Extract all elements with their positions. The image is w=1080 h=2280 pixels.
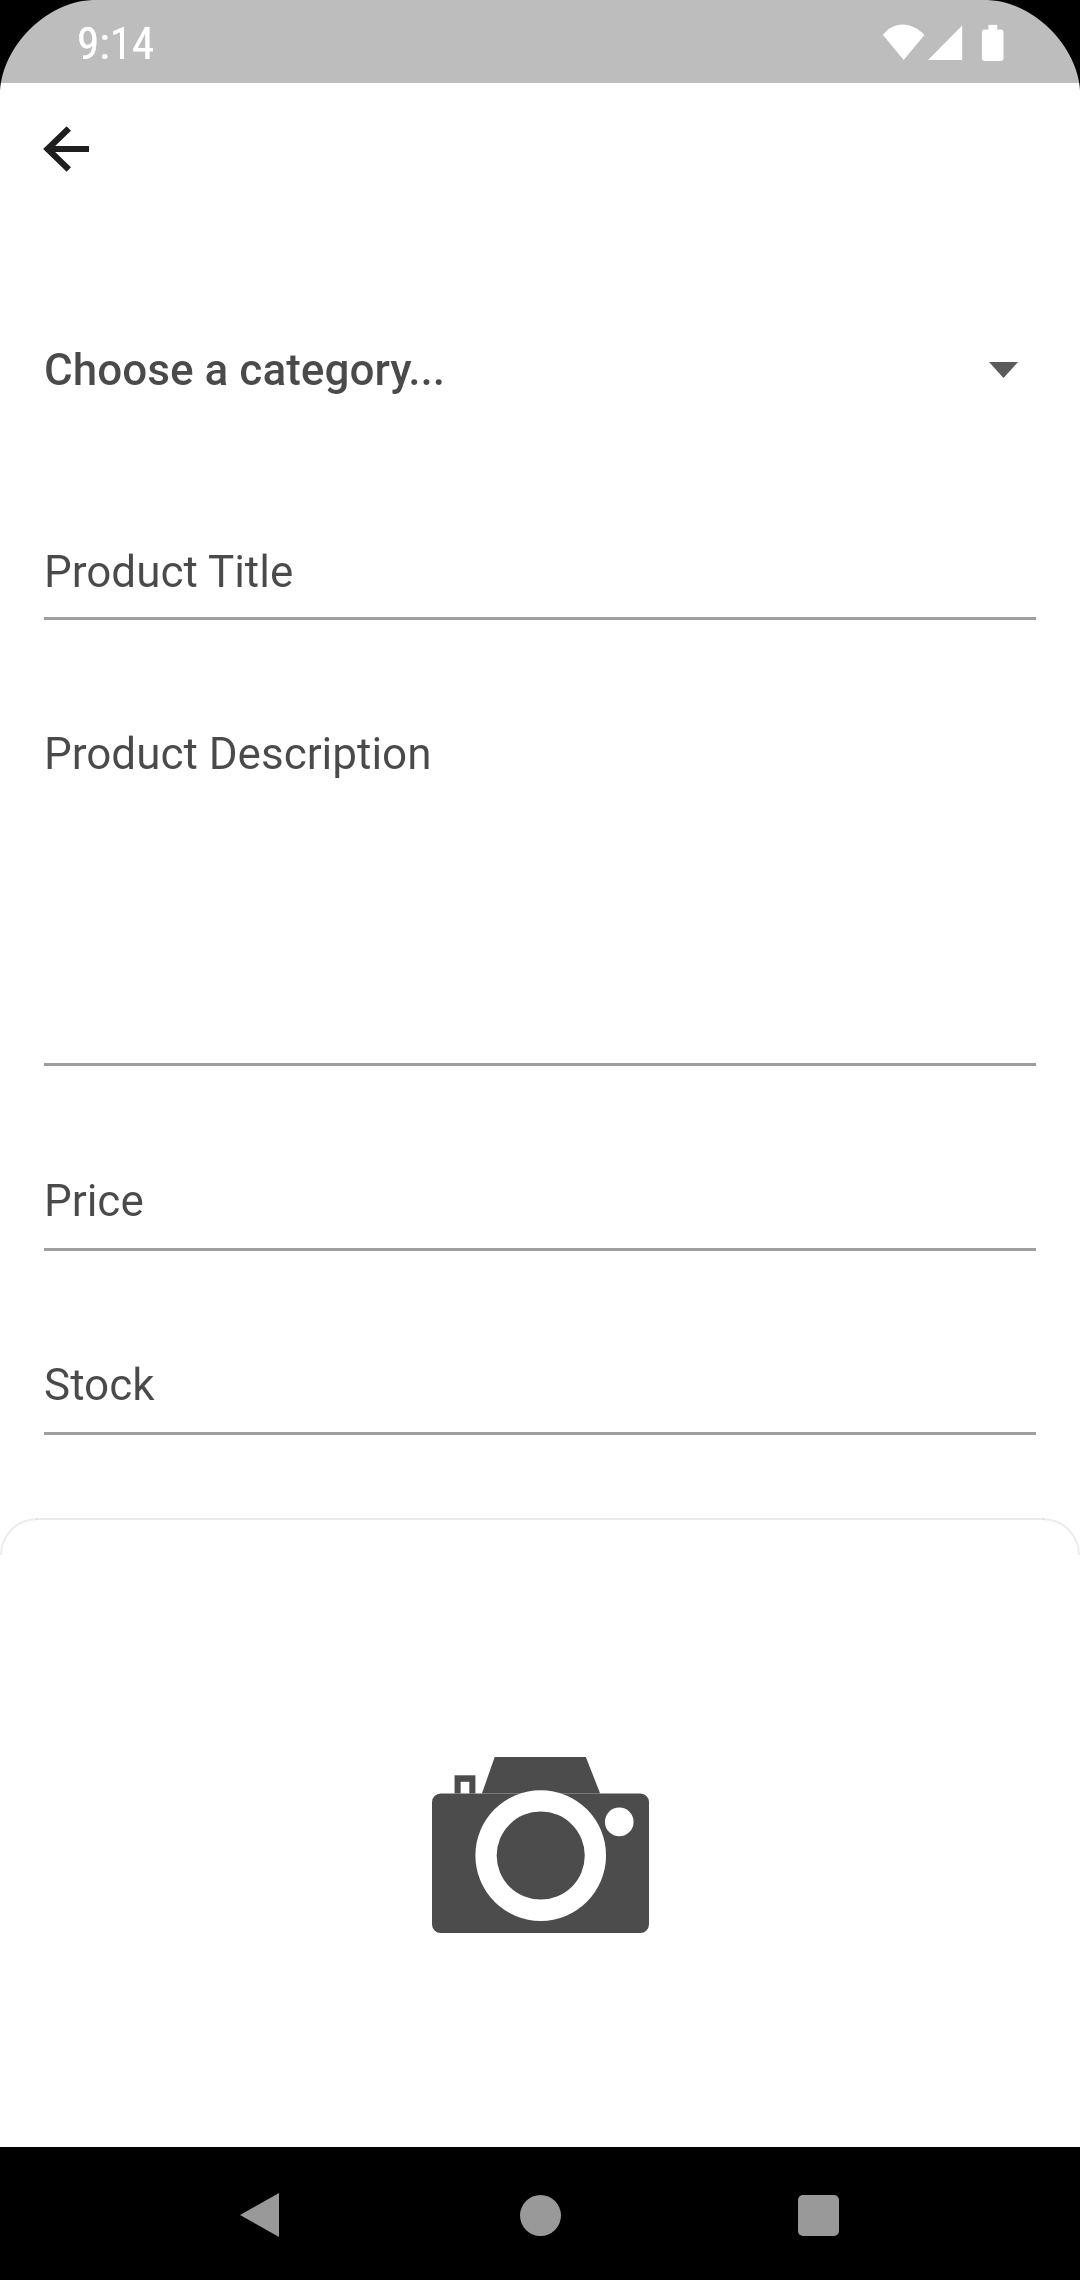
button[interactable]: Add product photo	[0, 1518, 1080, 2147]
button[interactable]: Navigate up	[18, 101, 114, 197]
staticText: Product Title	[44, 546, 294, 598]
staticText: Product Description	[44, 728, 432, 780]
button[interactable]: Home	[494, 2169, 586, 2261]
staticText: 9:14	[77, 17, 155, 70]
button[interactable]: Choose a category...	[0, 330, 1080, 416]
staticText: Stock	[44, 1359, 155, 1411]
staticText: Choose a category...	[44, 344, 446, 396]
button[interactable]: Back	[213, 2169, 305, 2261]
staticText: Price	[44, 1175, 144, 1227]
button[interactable]: Recent apps	[772, 2169, 864, 2261]
